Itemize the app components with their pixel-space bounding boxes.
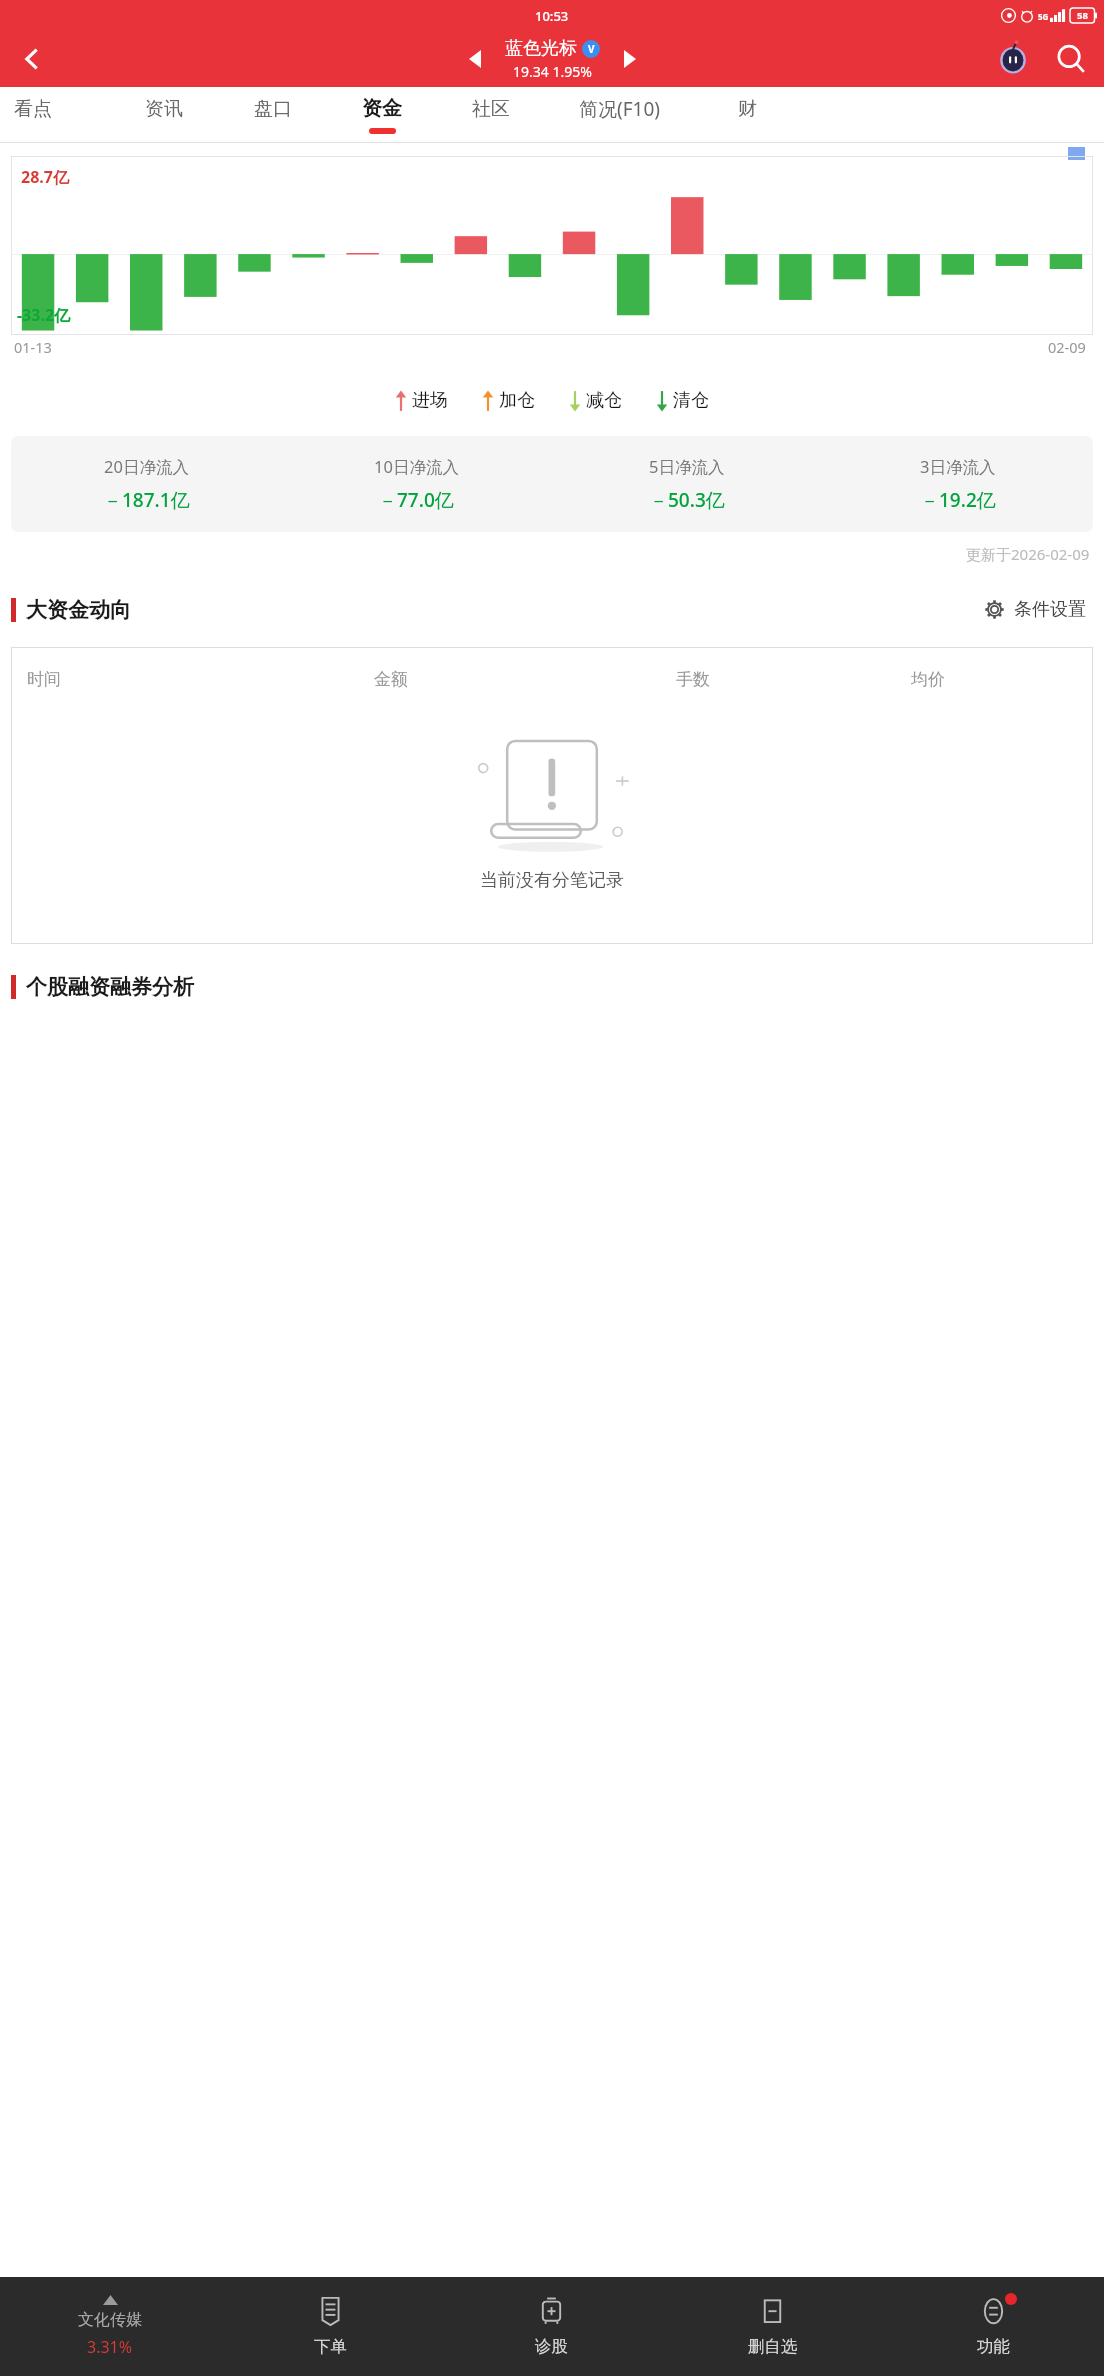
staticText: V	[588, 42, 595, 56]
staticText: 10日净流入	[374, 455, 459, 478]
staticText: 文化传媒	[78, 2310, 142, 2330]
staticText: 条件设置	[1014, 598, 1086, 621]
staticText: 加仓	[499, 389, 535, 412]
staticText: 5日净流入	[649, 455, 725, 478]
staticText: 10:53	[535, 7, 569, 25]
button[interactable]: 简况(F10)	[545, 87, 693, 143]
staticText: 功能	[977, 2336, 1010, 2357]
button[interactable]: 20日净流入	[11, 455, 281, 513]
staticText: 删自选	[748, 2336, 798, 2357]
button[interactable]: 资讯	[109, 87, 218, 143]
staticText: 社区	[472, 97, 510, 121]
button[interactable]: 社区	[436, 87, 545, 143]
staticText: －50.3亿	[649, 487, 725, 513]
button[interactable]: 盘口	[218, 87, 327, 143]
staticText: 大资金动向	[26, 597, 131, 623]
staticText: 财	[738, 97, 757, 121]
staticText: 当前没有分笔记录	[480, 869, 624, 892]
button[interactable]: 3日净流入	[822, 455, 1093, 513]
staticText: 个股融资融券分析	[26, 974, 194, 1000]
button[interactable]: 文化传媒	[0, 2277, 220, 2376]
button[interactable]: 5日净流入	[551, 455, 822, 513]
staticText: －77.0亿	[378, 487, 454, 513]
button[interactable]: Search	[1050, 38, 1092, 80]
staticText: 20日净流入	[104, 455, 189, 478]
button[interactable]: 诊股	[441, 2277, 662, 2376]
staticText: 诊股	[535, 2336, 568, 2357]
staticText: －19.2亿	[920, 487, 996, 513]
button[interactable]: 条件设置	[979, 594, 1090, 625]
staticText: 58	[1077, 9, 1088, 22]
staticText: 简况(F10)	[579, 96, 660, 122]
staticText: 3.31%	[87, 2336, 133, 2358]
button[interactable]: 清仓	[654, 387, 711, 414]
staticText: 3日净流入	[920, 455, 996, 478]
button[interactable]: Previous stock	[463, 47, 487, 71]
button[interactable]: 资金	[327, 87, 436, 143]
button[interactable]: 减仓	[567, 387, 624, 414]
button[interactable]: AI assistant	[992, 38, 1034, 80]
staticText: 盘口	[254, 97, 292, 121]
staticText: 19.34 1.95%	[513, 62, 592, 81]
staticText: 02-09	[1048, 337, 1086, 357]
staticText: 28.7亿	[21, 166, 69, 188]
staticText: 5G	[1038, 11, 1049, 22]
staticText: 资金	[362, 96, 402, 121]
button[interactable]: 财	[693, 87, 802, 143]
button[interactable]: 进场	[393, 387, 450, 414]
staticText: 资讯	[145, 97, 183, 121]
button[interactable]: 功能	[883, 2277, 1104, 2376]
button[interactable]: 下单	[220, 2277, 441, 2376]
button[interactable]: 10日净流入	[281, 455, 551, 513]
staticText: 看点	[14, 97, 52, 121]
staticText: 蓝色光标	[505, 37, 577, 60]
staticText: 减仓	[586, 389, 622, 412]
button[interactable]: 删自选	[662, 2277, 883, 2376]
button[interactable]: Next stock	[618, 47, 642, 71]
button[interactable]: Back	[10, 37, 54, 81]
staticText: -33.2亿	[17, 304, 71, 326]
staticText: 更新于2026-02-09	[966, 544, 1090, 564]
staticText: 进场	[412, 389, 448, 412]
staticText: 均价	[911, 669, 1077, 690]
button[interactable]: 加仓	[480, 387, 537, 414]
staticText: 手数	[676, 669, 911, 690]
staticText: 下单	[314, 2336, 347, 2357]
staticText: 01-13	[14, 337, 52, 357]
staticText: －187.1亿	[103, 487, 190, 513]
staticText: 清仓	[673, 389, 709, 412]
staticText: 时间	[27, 669, 374, 690]
button[interactable]: 看点	[0, 87, 87, 143]
staticText: 金额	[374, 669, 676, 690]
